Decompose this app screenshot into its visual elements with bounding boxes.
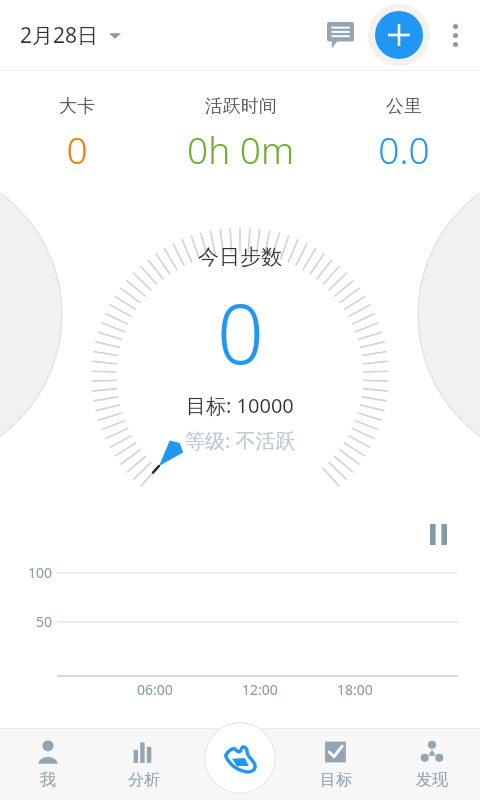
button[interactable]: More options	[430, 10, 480, 60]
staticText: 0	[66, 124, 88, 174]
staticText: 活跃时间	[205, 95, 277, 118]
button[interactable]: Messages	[316, 11, 364, 59]
staticText: 0.0	[378, 124, 430, 174]
staticText: 0	[217, 276, 264, 388]
staticText: 06:00	[137, 680, 173, 699]
button[interactable]: 目标	[288, 728, 384, 800]
staticText: 等级: 不活跃	[185, 427, 296, 454]
staticText: 50	[36, 612, 53, 631]
button[interactable]: Pause	[418, 514, 458, 554]
staticText: 我	[40, 770, 56, 790]
button[interactable]: 分析	[96, 728, 192, 800]
button[interactable]: 我	[0, 728, 96, 800]
button[interactable]: 活跃时间	[153, 93, 328, 176]
staticText: 分析	[128, 770, 160, 790]
button[interactable]: Add	[368, 4, 430, 66]
staticText: 18:00	[337, 680, 373, 699]
button[interactable]: 发现	[384, 728, 480, 800]
staticText: 目标	[320, 770, 352, 790]
staticText: 12:00	[242, 680, 278, 699]
button[interactable]: Steps	[204, 722, 276, 794]
staticText: 100	[28, 563, 53, 582]
staticText: 今日步数	[198, 244, 282, 270]
staticText: 2月28日	[20, 21, 99, 50]
staticText: 目标: 10000	[186, 392, 294, 419]
staticText: 发现	[416, 770, 448, 790]
staticText: 公里	[386, 95, 422, 118]
button[interactable]: 2月28日	[14, 15, 127, 56]
staticText: 大卡	[59, 95, 95, 118]
button[interactable]: 大卡	[0, 93, 153, 176]
button[interactable]: 公里	[328, 93, 480, 176]
staticText: 0h 0m	[187, 124, 294, 174]
